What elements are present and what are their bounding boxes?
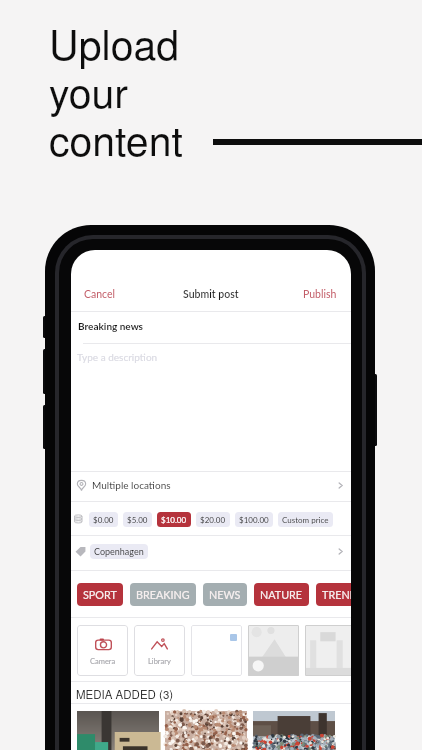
staticText: Multiple locations bbox=[92, 479, 171, 491]
staticText: Camera bbox=[90, 657, 116, 666]
staticText: Publish bbox=[303, 288, 337, 301]
button[interactable]: SPORT bbox=[77, 583, 123, 606]
button[interactable]: $0.00 bbox=[89, 512, 118, 527]
button[interactable]: Publish bbox=[303, 286, 337, 303]
staticText: Library bbox=[148, 657, 171, 666]
button[interactable]: Custom price bbox=[278, 512, 333, 527]
staticText: Upload bbox=[49, 13, 180, 72]
button[interactable]: $5.00 bbox=[123, 512, 152, 527]
button[interactable]: Multiple locations bbox=[71, 476, 351, 494]
staticText: $100.00 bbox=[239, 515, 269, 525]
button[interactable]: Library bbox=[134, 625, 185, 676]
button[interactable]: TRENDING bbox=[316, 583, 351, 606]
staticText: Breaking news bbox=[78, 320, 143, 332]
staticText: MEDIA ADDED (3) bbox=[76, 686, 174, 702]
button[interactable]: $20.00 bbox=[196, 512, 230, 527]
staticText: NATURE bbox=[260, 588, 303, 601]
staticText: NEWS bbox=[209, 588, 241, 601]
staticText: SPORT bbox=[83, 588, 117, 601]
button[interactable]: Camera bbox=[77, 625, 128, 676]
staticText: $10.00 bbox=[161, 515, 187, 525]
staticText: Custom price bbox=[282, 515, 329, 525]
staticText: Copenhagen bbox=[94, 546, 144, 557]
staticText: content bbox=[49, 109, 183, 168]
staticText: Type a description bbox=[77, 351, 158, 363]
staticText: your bbox=[49, 61, 128, 120]
button[interactable]: Copenhagen bbox=[71, 543, 351, 560]
staticText: TRENDING bbox=[322, 588, 351, 601]
staticText: BREAKING bbox=[136, 588, 190, 601]
button[interactable]: NATURE bbox=[254, 583, 309, 606]
button[interactable]: $100.00 bbox=[235, 512, 273, 527]
staticText: $5.00 bbox=[127, 515, 148, 525]
button[interactable]: Cancel bbox=[84, 286, 116, 303]
staticText: $20.00 bbox=[200, 515, 226, 525]
staticText: Cancel bbox=[84, 288, 116, 301]
staticText: $0.00 bbox=[93, 515, 114, 525]
button[interactable]: BREAKING bbox=[130, 583, 196, 606]
button[interactable]: NEWS bbox=[203, 583, 247, 606]
button[interactable]: $10.00 bbox=[157, 512, 191, 527]
staticText: Submit post bbox=[183, 288, 239, 301]
